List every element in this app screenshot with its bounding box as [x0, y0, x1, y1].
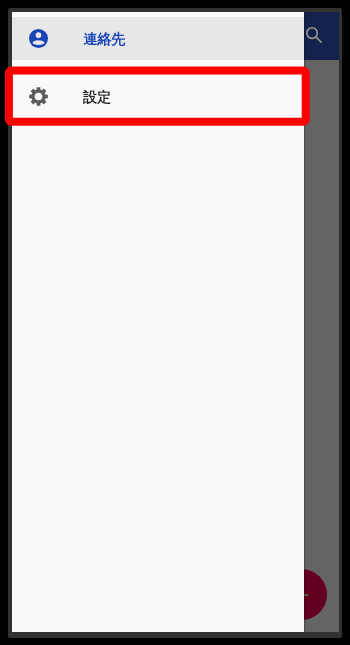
staticText: 設定 [83, 89, 111, 107]
staticText: 連絡先 [83, 31, 125, 49]
button[interactable]: 設定 [12, 75, 304, 118]
button[interactable] [12, 12, 339, 632]
button[interactable]: Search [294, 15, 334, 55]
button[interactable]: 連絡先 [12, 17, 304, 60]
button[interactable]: Add contact [276, 569, 327, 620]
